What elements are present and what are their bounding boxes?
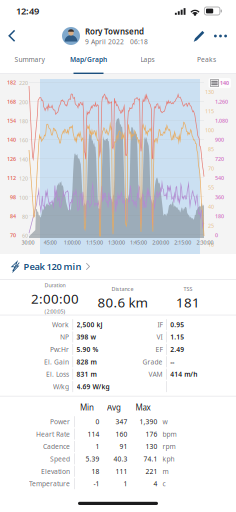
- staticText: 200: [19, 99, 28, 106]
- staticText: 70: [208, 165, 214, 172]
- staticText: 180: [215, 213, 224, 220]
- staticText: 140: [19, 156, 28, 163]
- staticText: Peak 120 min: [23, 260, 81, 273]
- staticText: 176: [146, 430, 158, 439]
- staticText: 12:49: [16, 5, 39, 17]
- button[interactable]: Back: [0, 23, 22, 48]
- staticText: 4.69 W/kg: [77, 382, 110, 391]
- staticText: Max: [135, 402, 150, 413]
- staticText: 2:00:00: [152, 239, 169, 246]
- staticText: 130: [146, 442, 158, 451]
- button[interactable]: Laps: [118, 50, 177, 74]
- button[interactable]: Chart legend: [208, 74, 236, 88]
- staticText: 1:45:00: [130, 239, 147, 246]
- staticText: 720: [215, 155, 224, 162]
- staticText: bpm: [163, 430, 177, 439]
- staticText: Work: [52, 320, 69, 329]
- staticText: 1: [124, 479, 128, 488]
- staticText: 100: [205, 127, 214, 134]
- staticText: 84: [10, 213, 16, 220]
- staticText: 98: [10, 194, 16, 201]
- staticText: IF: [158, 320, 163, 329]
- staticText: 2:30:00: [196, 239, 213, 246]
- staticText: El. Loss: [46, 370, 69, 379]
- staticText: 4: [154, 479, 158, 488]
- staticText: 828 m: [77, 357, 97, 366]
- staticText: TSS: [183, 285, 192, 293]
- staticText: Peaks: [197, 55, 216, 64]
- staticText: 2.49: [170, 345, 184, 354]
- staticText: w: [163, 417, 168, 426]
- staticText: 5.90 %: [77, 345, 99, 354]
- staticText: 80.6 km: [97, 294, 147, 311]
- button[interactable]: Edit: [188, 23, 210, 48]
- staticText: Min: [80, 402, 94, 413]
- staticText: 398 w: [77, 333, 97, 341]
- staticText: 140: [220, 79, 229, 87]
- staticText: 0.95: [170, 320, 184, 329]
- staticText: 60: [22, 232, 28, 239]
- staticText: 115: [205, 108, 214, 115]
- staticText: 1,080: [215, 117, 228, 124]
- staticText: 831 m: [77, 370, 97, 379]
- staticText: 2,500 kJ: [77, 320, 103, 329]
- staticText: 80: [22, 213, 28, 220]
- staticText: Avg: [107, 402, 121, 413]
- staticText: 180: [19, 118, 28, 125]
- button[interactable]: Summary: [0, 50, 59, 74]
- staticText: Temperature: [29, 479, 70, 488]
- staticText: 40: [208, 203, 214, 210]
- button[interactable]: More options: [210, 23, 236, 48]
- button[interactable]: Map/Graph: [59, 50, 118, 74]
- staticText: 220: [19, 79, 28, 87]
- staticText: rpm: [163, 442, 176, 451]
- staticText: Cadence: [43, 442, 70, 451]
- staticText: 160: [19, 137, 28, 144]
- staticText: 1,440: [215, 79, 228, 86]
- staticText: 181: [176, 294, 200, 311]
- staticText: c: [163, 479, 166, 488]
- staticText: Power: [50, 417, 70, 426]
- staticText: 91: [120, 442, 128, 451]
- staticText: 900: [215, 136, 224, 143]
- staticText: 360: [215, 194, 224, 201]
- staticText: 45:00: [44, 239, 57, 246]
- staticText: 182: [7, 79, 16, 86]
- staticText: --: [170, 357, 174, 366]
- staticText: 221: [146, 467, 158, 476]
- staticText: 347: [116, 417, 128, 426]
- staticText: EF: [156, 345, 163, 354]
- staticText: 10: [208, 241, 214, 248]
- staticText: 100: [19, 194, 28, 201]
- staticText: 111: [116, 467, 128, 476]
- staticText: Map/Graph: [70, 55, 107, 64]
- button[interactable]: Peaks: [177, 50, 236, 74]
- staticText: 114: [88, 430, 100, 439]
- staticText: 2:00:00: [31, 290, 79, 307]
- staticText: Summary: [14, 55, 44, 64]
- staticText: Pw:Hr: [50, 345, 69, 354]
- staticText: 120: [19, 175, 28, 182]
- staticText: 0: [215, 232, 218, 239]
- staticText: kph: [163, 454, 175, 463]
- staticText: NP: [60, 333, 69, 341]
- staticText: 74.1: [144, 454, 158, 463]
- staticText: Duration: [44, 282, 65, 289]
- staticText: 160: [116, 430, 128, 439]
- staticText: Rory Townsend: [85, 26, 144, 37]
- staticText: 25: [208, 222, 214, 229]
- staticText: 70: [10, 232, 16, 239]
- staticText: Heart Rate: [36, 430, 70, 439]
- button[interactable]: Peak 120 min: [0, 254, 236, 279]
- staticText: 1:30:00: [108, 239, 125, 246]
- staticText: El. Gain: [44, 357, 69, 366]
- staticText: 1,260: [215, 98, 228, 105]
- staticText: 40.3: [114, 454, 128, 463]
- staticText: (2:00:05): [44, 308, 65, 315]
- staticText: Grade: [143, 357, 163, 366]
- staticText: W/kg: [53, 382, 69, 391]
- staticText: 1: [96, 442, 100, 451]
- staticText: 126: [7, 155, 16, 162]
- staticText: Laps: [140, 55, 154, 64]
- staticText: 30:00: [22, 239, 35, 246]
